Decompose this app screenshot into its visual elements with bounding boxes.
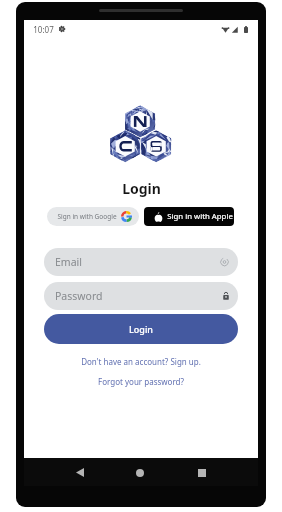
button[interactable]: Login [44, 314, 238, 344]
button[interactable]: Forgot your password? [24, 373, 258, 389]
staticText: Email [55, 255, 82, 269]
staticText: Don't have an account? Sign up. [81, 356, 201, 367]
button[interactable]: Sign in with Apple [144, 207, 234, 226]
staticText: Sign in with Google [57, 212, 117, 221]
staticText: Login [122, 179, 161, 198]
staticText: Sign in with Apple [167, 211, 233, 222]
button[interactable]: Email [44, 248, 238, 276]
button[interactable]: Don't have an account? Sign up. [24, 353, 258, 369]
staticText: Password [55, 289, 103, 303]
staticText: Login [129, 323, 153, 335]
staticText: 10:07 [33, 24, 54, 35]
button[interactable]: Back [68, 461, 91, 484]
button[interactable]: Sign in with Google [47, 207, 139, 226]
button[interactable]: Home [128, 461, 151, 484]
button[interactable]: Recent apps [190, 461, 213, 484]
staticText: Forgot your password? [98, 376, 184, 387]
button[interactable]: Password [44, 282, 238, 310]
